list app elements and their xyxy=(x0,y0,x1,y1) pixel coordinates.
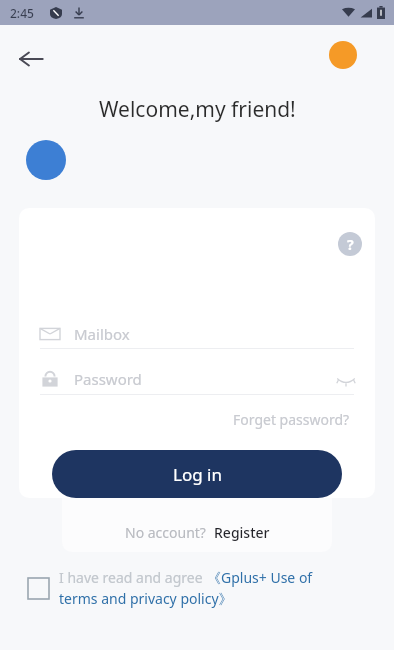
button[interactable]: Help xyxy=(338,232,362,256)
staticText: Mailbox xyxy=(74,324,130,344)
other: Agree to terms xyxy=(28,578,49,599)
button[interactable]: Password xyxy=(40,361,354,397)
button[interactable]: Back xyxy=(10,38,52,80)
button[interactable]: Profile xyxy=(329,41,357,69)
staticText: Welcome,my friend! xyxy=(99,95,296,124)
staticText: I have read and agree xyxy=(59,568,207,587)
staticText: Password xyxy=(74,369,142,389)
staticText: 2:45 xyxy=(10,5,34,21)
staticText: Log in xyxy=(173,463,222,486)
button[interactable]: Mailbox xyxy=(40,316,354,352)
staticText: ? xyxy=(347,235,354,254)
staticText: terms and privacy policy》 xyxy=(59,589,233,608)
staticText: No account? xyxy=(125,523,206,542)
button[interactable]: No account? xyxy=(125,523,270,542)
staticText: 《Gplus+ Use of xyxy=(207,568,313,587)
staticText: Register xyxy=(214,523,270,542)
button[interactable]: Show password xyxy=(334,368,358,392)
staticText: Forget password? xyxy=(233,410,350,429)
button[interactable]: Forget password? xyxy=(229,406,354,433)
button[interactable]: Agree to terms xyxy=(28,568,368,606)
button[interactable]: Log in xyxy=(52,450,342,498)
